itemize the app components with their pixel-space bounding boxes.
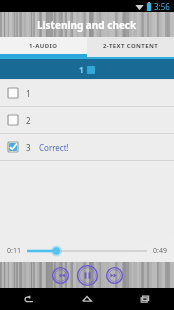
button[interactable]: Fast forward [106,267,123,284]
button[interactable]: 2-TEXT CONTENT [87,37,174,54]
button[interactable]: Back [0,288,58,310]
staticText: 1 [79,64,84,75]
button[interactable]: Home [58,288,116,310]
button[interactable]: Rewind [52,267,69,284]
button[interactable]: Pause [77,265,98,286]
button[interactable]: 1 [0,80,174,107]
button[interactable]: 1-AUDIO [0,37,87,54]
staticText: 2 [26,115,31,126]
staticText: 0:49 [153,246,167,256]
button[interactable]: Question marker [87,66,95,74]
staticText: Listening and check [37,18,137,32]
staticText: 2-TEXT CONTENT [103,42,159,50]
button[interactable]: Recent apps [116,288,174,310]
staticText: 3 [26,142,31,153]
staticText: 3:56 [154,1,170,12]
button[interactable] [27,244,147,258]
staticText: 0:11 [7,246,21,256]
staticText: 1-AUDIO [29,42,58,50]
button[interactable]: 3 [0,134,174,161]
button[interactable]: 2 [0,107,174,134]
staticText: Correct! [39,142,69,153]
staticText: 1 [26,88,31,99]
